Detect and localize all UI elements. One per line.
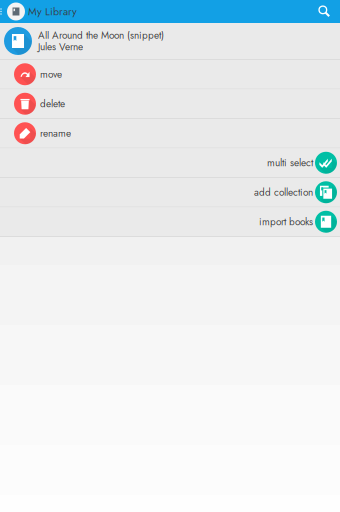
button[interactable]: rename	[0, 119, 340, 147]
button[interactable]: Library	[7, 2, 25, 20]
staticText: delete	[40, 96, 65, 111]
button[interactable]: Search	[314, 0, 334, 23]
staticText: add collection	[254, 185, 313, 199]
staticText: My Library	[28, 4, 77, 19]
button[interactable]: add collection	[0, 178, 340, 206]
staticText: Jules Verne	[38, 39, 83, 54]
button[interactable]: move	[0, 60, 340, 88]
staticText: import books	[259, 214, 313, 229]
button[interactable]: delete	[0, 89, 340, 118]
button[interactable]: import books	[0, 207, 340, 236]
staticText: rename	[40, 126, 71, 140]
staticText: multi select	[267, 155, 313, 170]
button[interactable]: Menu	[0, 0, 7, 23]
staticText: move	[40, 67, 62, 81]
staticText: All Around the Moon (snippet)	[38, 28, 164, 42]
button[interactable]: multi select	[0, 148, 340, 177]
button[interactable]: All Around the Moon (snippet)	[0, 23, 340, 59]
